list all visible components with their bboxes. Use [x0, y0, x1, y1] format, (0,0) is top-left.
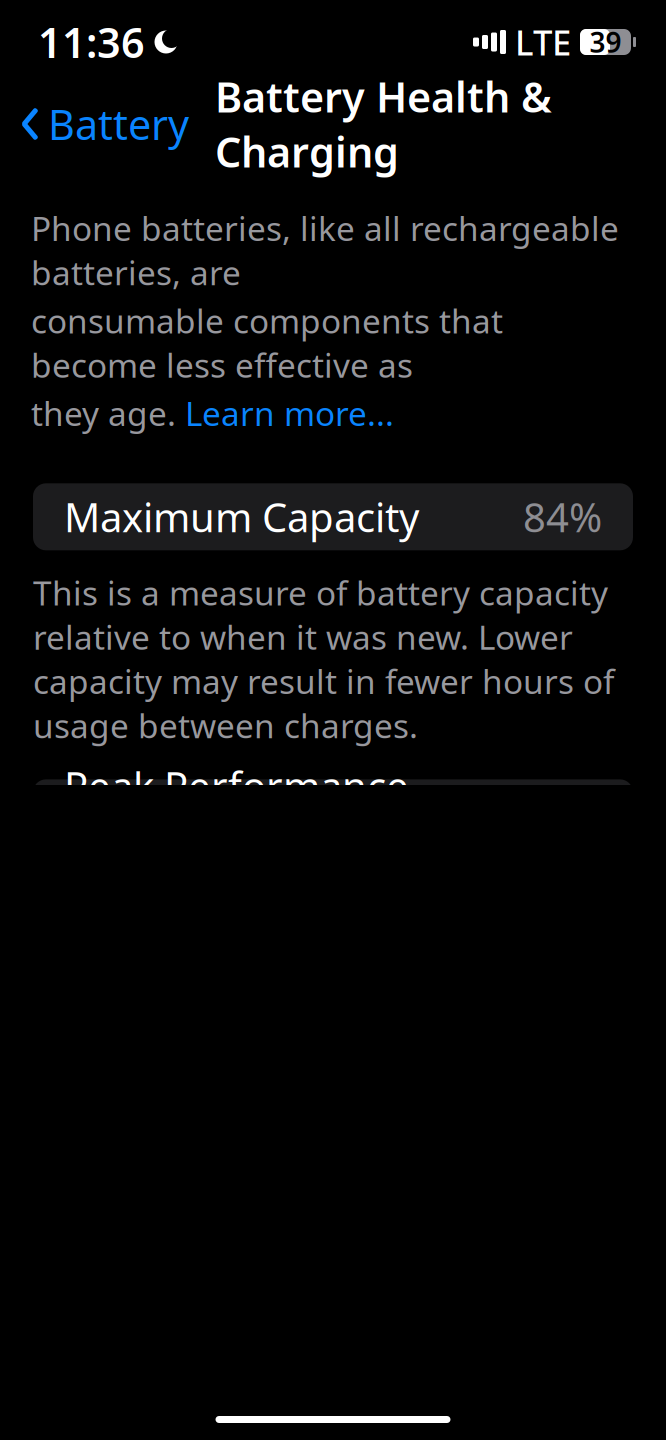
- button[interactable]: Peak Performance Capability: [33, 779, 633, 845]
- staticText: Learn more...: [185, 391, 394, 435]
- button[interactable]: Learn more...: [185, 391, 394, 435]
- staticText: 39: [589, 23, 621, 61]
- staticText: consumable components that become less e…: [31, 298, 503, 387]
- staticText: 84%: [523, 490, 602, 543]
- staticText: Maximum Capacity: [64, 490, 419, 543]
- staticText: LTE: [515, 19, 571, 65]
- staticText: they age.: [31, 391, 185, 435]
- button[interactable]: Battery: [0, 89, 189, 159]
- staticText: Battery Health & Charging: [215, 69, 552, 179]
- staticText: 11:36: [38, 15, 145, 69]
- staticText: Phone batteries, like all rechargeable b…: [31, 206, 619, 294]
- button[interactable]: Maximum Capacity: [33, 483, 633, 550]
- staticText: Peak Performance Capability: [64, 759, 409, 865]
- staticText: This is a measure of battery capacity re…: [33, 570, 614, 747]
- staticText: Battery: [48, 97, 189, 151]
